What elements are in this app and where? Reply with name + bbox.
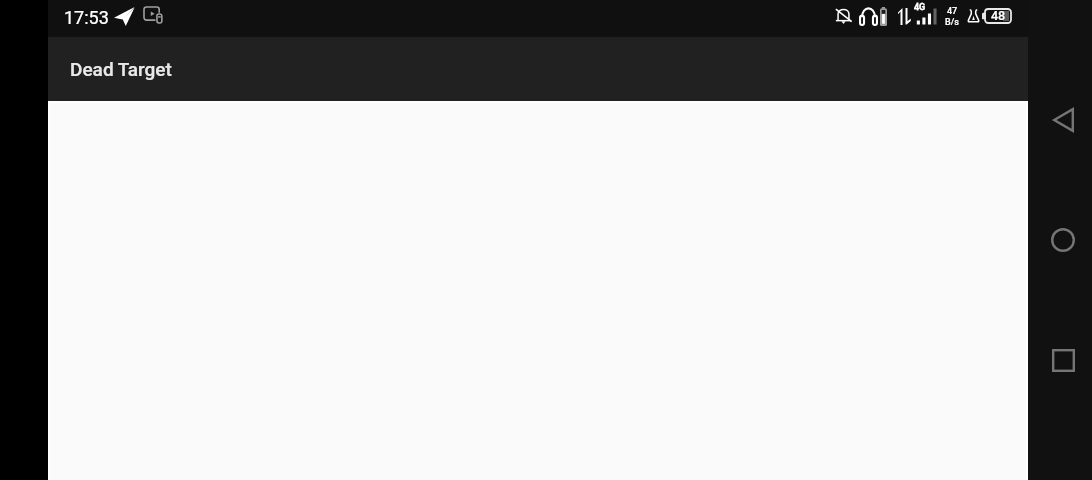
staticText: Dead Target (70, 58, 172, 80)
button[interactable]: Home (1031, 202, 1092, 278)
staticText: 17:53 (64, 7, 109, 28)
staticText: 4G (914, 2, 926, 13)
staticText: 47 (947, 6, 958, 17)
staticText: 48 (991, 8, 1006, 23)
staticText: B/s (945, 17, 959, 28)
button[interactable]: Dead Target (48, 37, 194, 101)
button[interactable]: Back (1031, 82, 1092, 158)
button[interactable]: Recents (1031, 322, 1092, 398)
